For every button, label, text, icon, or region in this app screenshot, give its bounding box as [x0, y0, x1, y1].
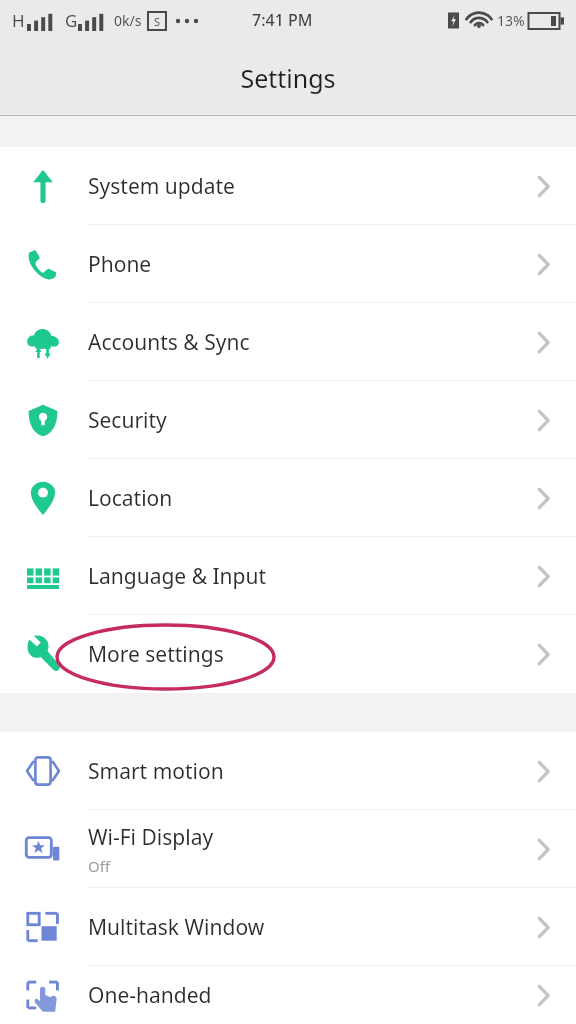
button[interactable]: Multitask Window	[0, 888, 576, 966]
button[interactable]: Language & Input	[0, 537, 576, 615]
staticText: Security	[88, 406, 167, 435]
staticText: Location	[88, 484, 173, 513]
staticText: H	[12, 9, 25, 32]
staticText: Accounts & Sync	[88, 328, 250, 357]
button[interactable]: One-handed	[0, 966, 576, 1024]
staticText: 0k/s	[114, 11, 142, 30]
button[interactable]: Location	[0, 459, 576, 537]
staticText: G	[65, 9, 78, 32]
staticText: Off	[88, 856, 111, 876]
staticText: Settings	[240, 61, 336, 95]
button[interactable]: Wi-Fi Display	[0, 810, 576, 888]
button[interactable]: Security	[0, 381, 576, 459]
staticText: Phone	[88, 250, 152, 279]
button[interactable]: System update	[0, 147, 576, 225]
staticText: S	[154, 14, 161, 29]
staticText: 7:41 PM	[252, 9, 313, 31]
staticText: System update	[88, 172, 235, 201]
staticText: Smart motion	[88, 757, 224, 786]
staticText: One-handed	[88, 981, 212, 1010]
button[interactable]: Accounts & Sync	[0, 303, 576, 381]
staticText: More settings	[88, 640, 224, 669]
staticText: Multitask Window	[88, 913, 265, 942]
staticText: Wi-Fi Display	[88, 823, 214, 852]
staticText: Language & Input	[88, 562, 267, 591]
button[interactable]: Phone	[0, 225, 576, 303]
button[interactable]: Smart motion	[0, 732, 576, 810]
button[interactable]: More settings	[0, 615, 576, 693]
staticText: 13%	[497, 11, 525, 30]
